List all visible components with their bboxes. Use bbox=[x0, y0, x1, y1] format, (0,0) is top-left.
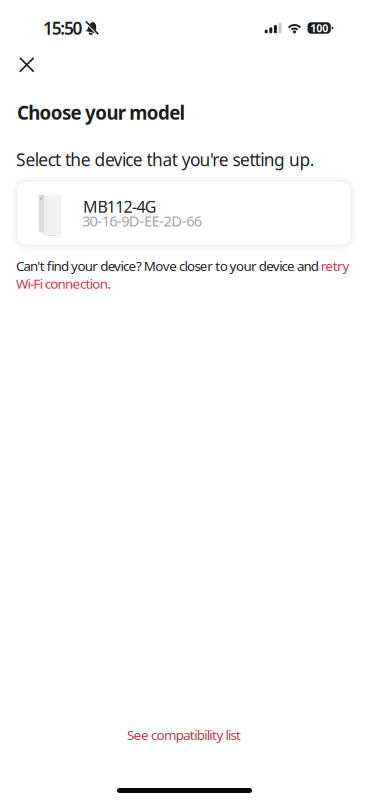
button[interactable]: Close bbox=[0, 43, 51, 86]
staticText: 30-16-9D-EE-2D-66 bbox=[82, 211, 202, 230]
button[interactable]: See compatibility list bbox=[111, 718, 257, 752]
staticText: Select the device that you're setting up… bbox=[16, 148, 315, 171]
staticText: Can't find your device? Move closer to y… bbox=[16, 257, 350, 292]
staticText: 100 bbox=[310, 21, 328, 35]
staticText: Choose your model bbox=[17, 100, 185, 125]
staticText: 15:50 bbox=[43, 16, 83, 39]
button[interactable]: MB112-4G bbox=[17, 181, 351, 245]
staticText: MB112-4G bbox=[83, 196, 157, 217]
staticText: See compatibility list bbox=[127, 726, 241, 744]
